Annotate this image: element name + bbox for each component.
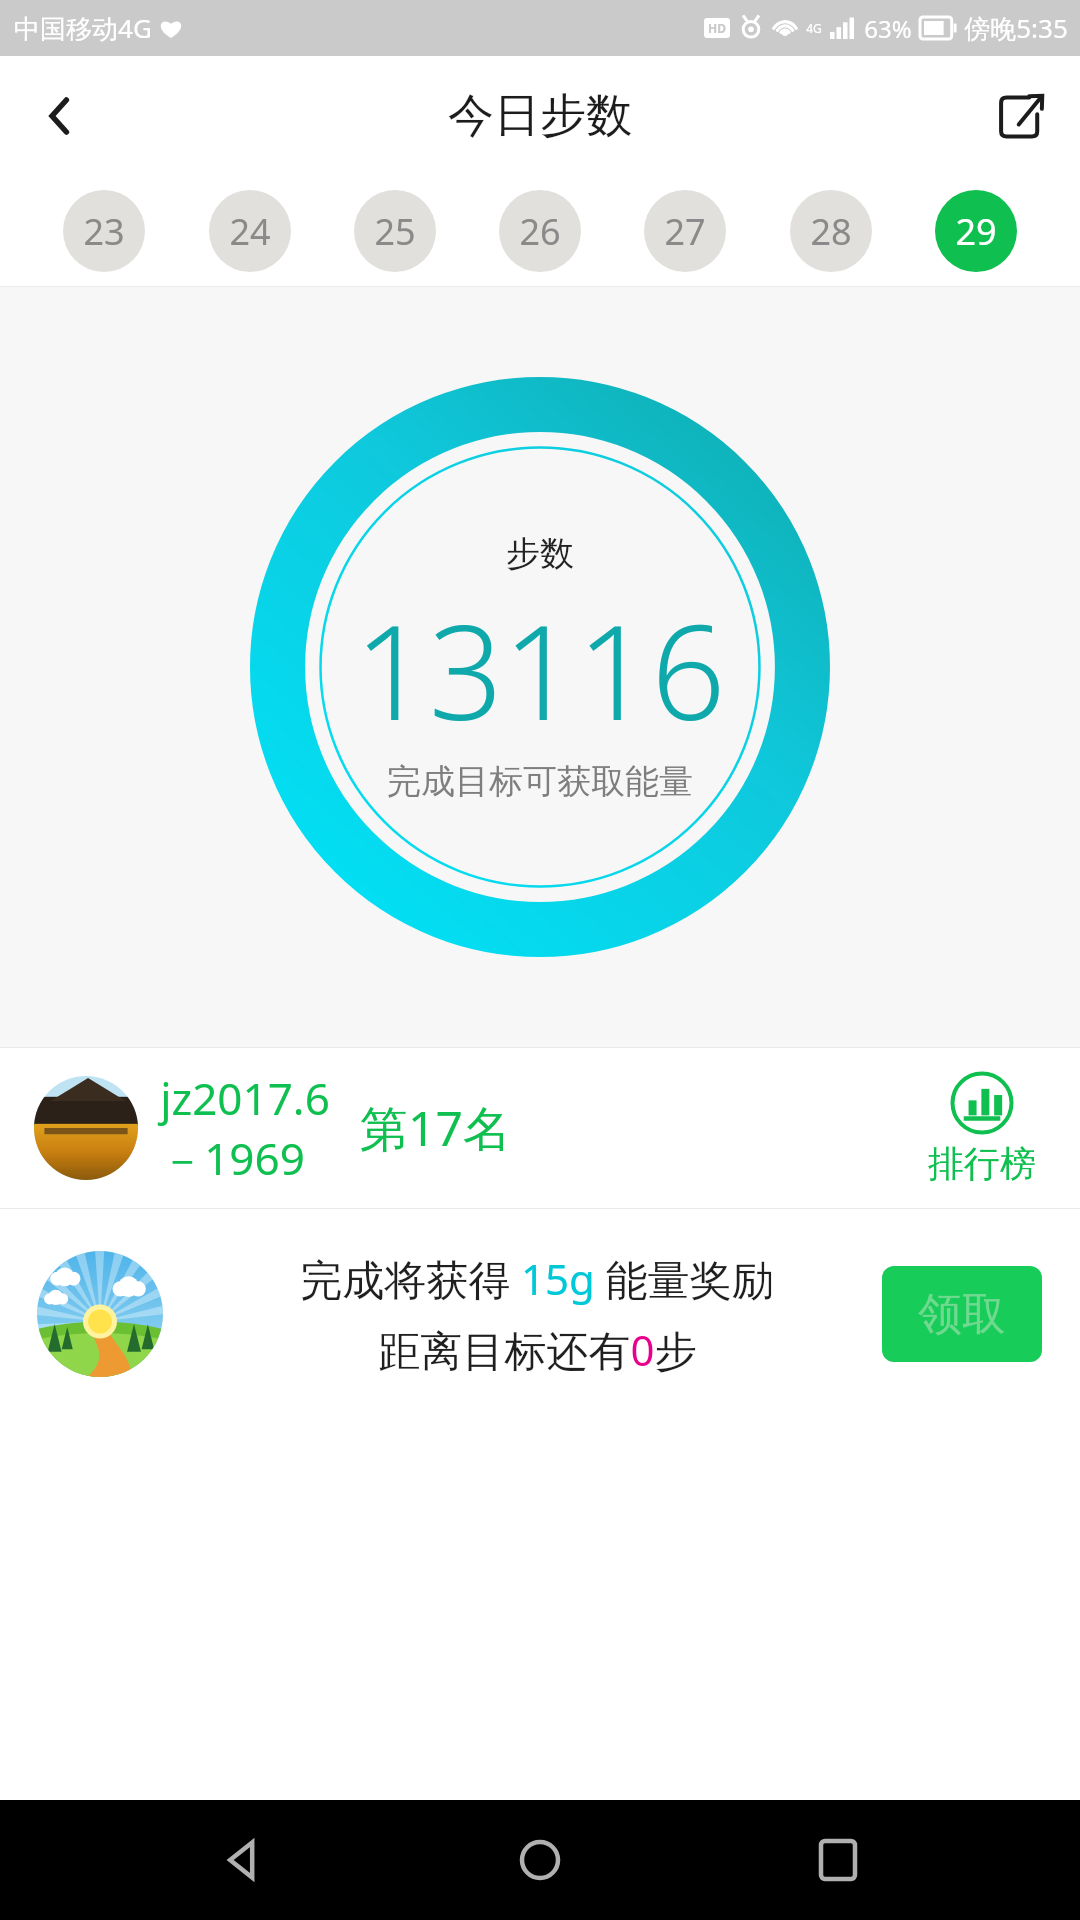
staticText: HD [708, 20, 726, 36]
button[interactable]: 27 [644, 190, 726, 272]
button[interactable]: Share [986, 82, 1054, 150]
button[interactable]: Back [26, 82, 94, 150]
staticText: 25 [374, 207, 416, 256]
button[interactable]: jz2017.6 [0, 1048, 1080, 1208]
staticText: 完成目标可获取能量 [387, 760, 693, 803]
staticText: 第17名 [360, 1095, 511, 1161]
staticText: 13116 [354, 581, 726, 758]
staticText: 27 [664, 207, 706, 256]
staticText: 26 [519, 207, 561, 256]
staticText: 29 [955, 207, 997, 256]
staticText: 今日步数 [448, 87, 632, 145]
staticText: －1969 [160, 1128, 305, 1188]
button[interactable]: Recents [783, 1805, 893, 1915]
staticText: 完成将获得 15g 能量奖励 [300, 1250, 774, 1307]
staticText: 23 [83, 207, 125, 256]
button[interactable]: Back [188, 1805, 298, 1915]
button[interactable]: 26 [499, 190, 581, 272]
button[interactable]: 25 [354, 190, 436, 272]
button[interactable]: 24 [209, 190, 291, 272]
button[interactable]: 领取 [882, 1266, 1042, 1362]
staticText: 步数 [506, 532, 574, 575]
staticText: 28 [810, 207, 852, 256]
button[interactable]: 23 [63, 190, 145, 272]
button[interactable]: 29 [935, 190, 1017, 272]
staticText: 63% [864, 12, 912, 45]
staticText: 领取 [918, 1287, 1006, 1342]
button[interactable]: 排行榜 [928, 1071, 1036, 1186]
staticText: 傍晚5:35 [964, 10, 1068, 46]
staticText: 4G [806, 20, 822, 36]
staticText: 24 [229, 207, 271, 256]
button[interactable]: Home [485, 1805, 595, 1915]
staticText: jz2017.6 [160, 1068, 330, 1128]
staticText: 距离目标还有0步 [378, 1321, 697, 1378]
staticText: 中国移动4G [14, 10, 152, 46]
button[interactable]: 28 [790, 190, 872, 272]
staticText: 排行榜 [928, 1141, 1036, 1186]
